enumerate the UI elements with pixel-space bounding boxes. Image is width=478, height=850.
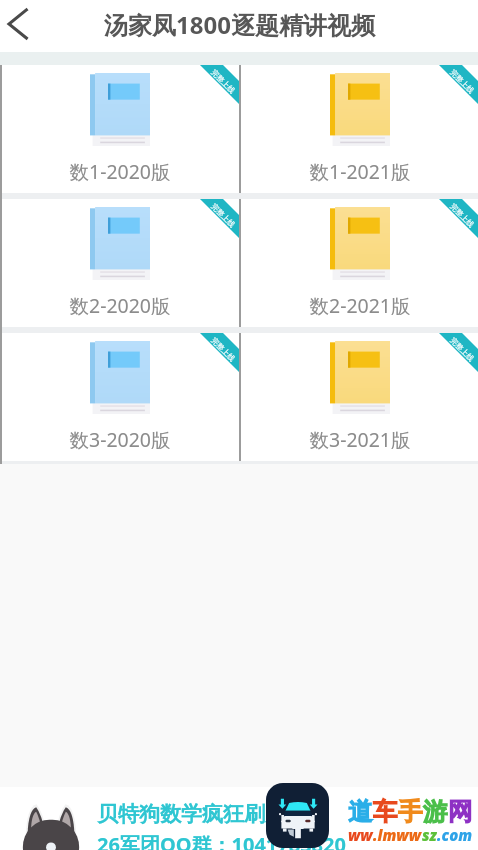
staticText: 贝特狗数学疯狂刷题: [97, 801, 286, 827]
staticText: 数1-2020版: [69, 158, 171, 185]
button[interactable]: 数1-2020版: [0, 65, 239, 193]
staticText: 完整上线: [448, 68, 476, 95]
staticText: 网: [448, 796, 473, 827]
button[interactable]: 数1-2021版: [241, 65, 478, 193]
staticText: 数1-2021版: [309, 158, 411, 185]
staticText: 完整上线: [209, 68, 237, 95]
staticText: 车: [373, 796, 398, 827]
staticText: 完整上线: [448, 202, 476, 229]
staticText: 汤家凤1800逐题精讲视频: [104, 8, 375, 41]
staticText: 道: [348, 796, 373, 827]
staticText: 完整上线: [209, 336, 237, 363]
button[interactable]: 数2-2021版: [241, 199, 478, 327]
staticText: 数3-2021版: [309, 426, 411, 453]
staticText: 26军团QQ群：1041783820: [97, 831, 346, 850]
staticText: sz: [422, 825, 437, 845]
staticText: 数2-2021版: [309, 292, 411, 319]
button[interactable]: 数3-2021版: [241, 333, 478, 461]
staticText: 完整上线: [448, 336, 476, 363]
staticText: 完整上线: [209, 202, 237, 229]
staticText: 数2-2020版: [69, 292, 171, 319]
staticText: 游: [423, 796, 448, 827]
staticText: 数3-2020版: [69, 426, 171, 453]
button[interactable]: Back: [0, 1, 40, 51]
button[interactable]: 数2-2020版: [0, 199, 239, 327]
staticText: 手: [398, 796, 423, 827]
button[interactable]: 贝特狗数学疯狂刷题: [0, 787, 478, 850]
staticText: ww: [348, 825, 373, 845]
staticText: .com: [437, 825, 473, 845]
button[interactable]: 数3-2020版: [0, 333, 239, 461]
staticText: .lmww: [373, 825, 422, 845]
